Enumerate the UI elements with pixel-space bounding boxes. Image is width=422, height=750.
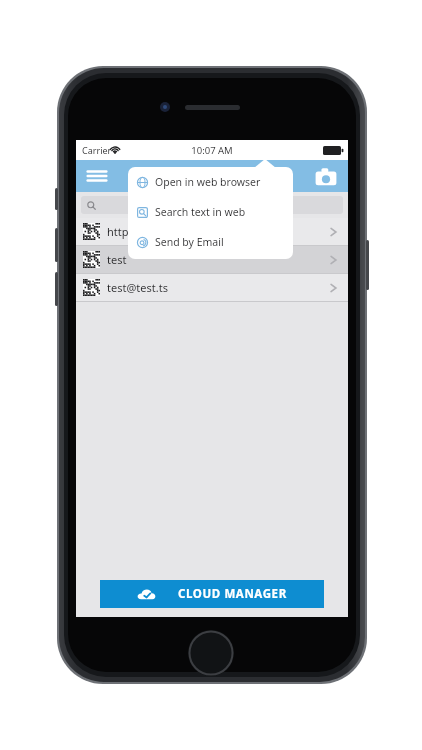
button[interactable]: Send by Email <box>128 227 293 257</box>
staticText: CLOUD MANAGER <box>178 586 287 602</box>
staticText: 10:07 AM <box>191 144 233 157</box>
button[interactable]: http://test.ts <box>76 218 348 245</box>
button[interactable]: Scan with camera <box>313 165 339 187</box>
staticText: Send by Email <box>155 235 224 249</box>
staticText: test <box>107 252 330 267</box>
button[interactable]: CLOUD MANAGER <box>100 580 324 608</box>
button[interactable]: test <box>76 246 348 273</box>
staticText: Search text in web <box>155 205 246 219</box>
staticText: Open in web browser <box>155 175 261 189</box>
staticText: Carrier <box>82 144 112 156</box>
button[interactable] <box>81 196 343 214</box>
button[interactable]: test@test.ts <box>76 274 348 301</box>
staticText: test@test.ts <box>107 280 330 295</box>
button[interactable]: Search text in web <box>128 197 293 227</box>
button[interactable]: Menu <box>84 164 110 188</box>
button[interactable]: Open in web browser <box>128 167 293 197</box>
staticText: http://test.ts <box>107 224 330 239</box>
